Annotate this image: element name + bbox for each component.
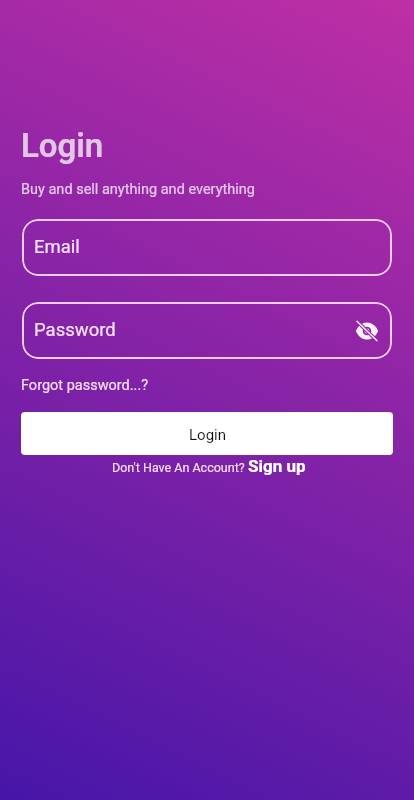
button[interactable]: Sign up [248, 456, 306, 476]
staticText: Don't Have An Account? [112, 460, 245, 475]
staticText: Login [21, 126, 104, 165]
button[interactable]: Password [22, 302, 392, 359]
staticText: Email [34, 236, 80, 258]
staticText: Login [189, 426, 226, 444]
button[interactable]: Login [21, 412, 393, 455]
staticText: Password [34, 319, 116, 341]
button[interactable]: Forgot password...? [21, 377, 149, 394]
button[interactable]: Email [22, 219, 392, 276]
button[interactable]: Show password [351, 315, 383, 347]
staticText: Buy and sell anything and everything [21, 181, 255, 198]
